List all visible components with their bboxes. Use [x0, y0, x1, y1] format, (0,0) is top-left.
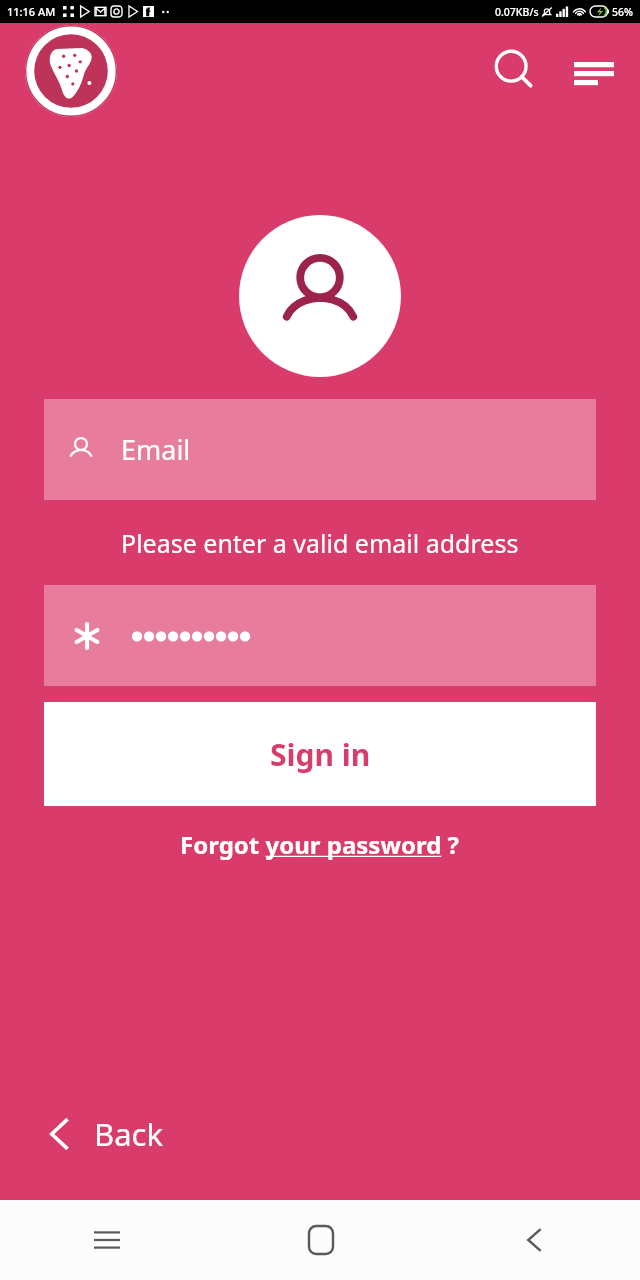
- button[interactable]: Sign in: [44, 702, 596, 806]
- button[interactable]: Back: [427, 1200, 640, 1280]
- button[interactable]: Back: [34, 1103, 175, 1165]
- staticText: 0.07KB/s: [495, 5, 539, 19]
- button[interactable]: Forgot your password ?: [168, 820, 472, 869]
- button[interactable]: Recent apps: [0, 1200, 214, 1280]
- staticText: Sign in: [270, 734, 371, 775]
- staticText: 56%: [612, 5, 633, 19]
- staticText: Please enter a valid email address: [121, 526, 519, 560]
- button[interactable]: Email: [44, 399, 596, 500]
- button[interactable]: [44, 585, 596, 686]
- button[interactable]: Menu: [566, 43, 622, 99]
- staticText: Email: [121, 431, 191, 468]
- staticText: 11:16 AM: [7, 4, 56, 19]
- staticText: Back: [94, 1113, 163, 1155]
- button[interactable]: Home: [214, 1200, 427, 1280]
- button[interactable]: Profile picture: [239, 215, 401, 377]
- staticText: Forgot your password ?: [180, 828, 460, 861]
- button[interactable]: Search: [484, 40, 546, 102]
- button[interactable]: Logo: [24, 24, 118, 118]
